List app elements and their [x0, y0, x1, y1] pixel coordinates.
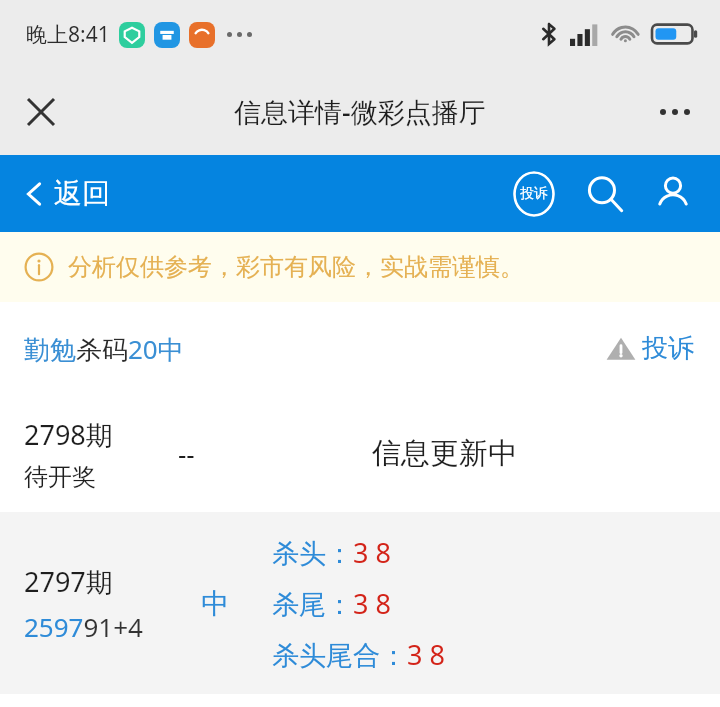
- staticText: 返回: [54, 176, 110, 211]
- staticText: 信息详情-微彩点播厅: [234, 93, 486, 130]
- staticText: 杀尾：3 8: [272, 585, 391, 622]
- staticText: 杀头尾合：3 8: [272, 636, 445, 673]
- staticText: 投诉: [642, 332, 694, 365]
- staticText: 259791+4: [24, 609, 143, 644]
- button[interactable]: More options: [644, 81, 706, 143]
- button[interactable]: Account: [646, 167, 700, 221]
- staticText: 信息更新中: [372, 435, 517, 472]
- button[interactable]: Close: [10, 81, 72, 143]
- button[interactable]: 投诉: [601, 326, 698, 371]
- button[interactable]: 投诉: [508, 168, 560, 220]
- staticText: 杀头：3 8: [272, 534, 391, 571]
- button[interactable]: 分析仅供参考，彩市有风险，实战需谨慎。: [0, 232, 720, 302]
- staticText: 2797期: [24, 563, 113, 600]
- staticText: 分析仅供参考，彩市有风险，实战需谨慎。: [68, 252, 524, 282]
- staticText: 中: [201, 586, 229, 621]
- button[interactable]: 2797期: [0, 512, 720, 694]
- staticText: 晚上8:41: [26, 20, 110, 49]
- button[interactable]: 勤勉杀码20中: [24, 331, 184, 367]
- staticText: --: [178, 436, 195, 471]
- button[interactable]: 2798期: [0, 395, 720, 512]
- staticText: 2798期: [24, 416, 113, 453]
- staticText: 待开奖: [24, 462, 96, 492]
- button[interactable]: 返回: [16, 170, 118, 217]
- staticText: 投诉: [520, 185, 548, 203]
- button[interactable]: Search: [578, 167, 632, 221]
